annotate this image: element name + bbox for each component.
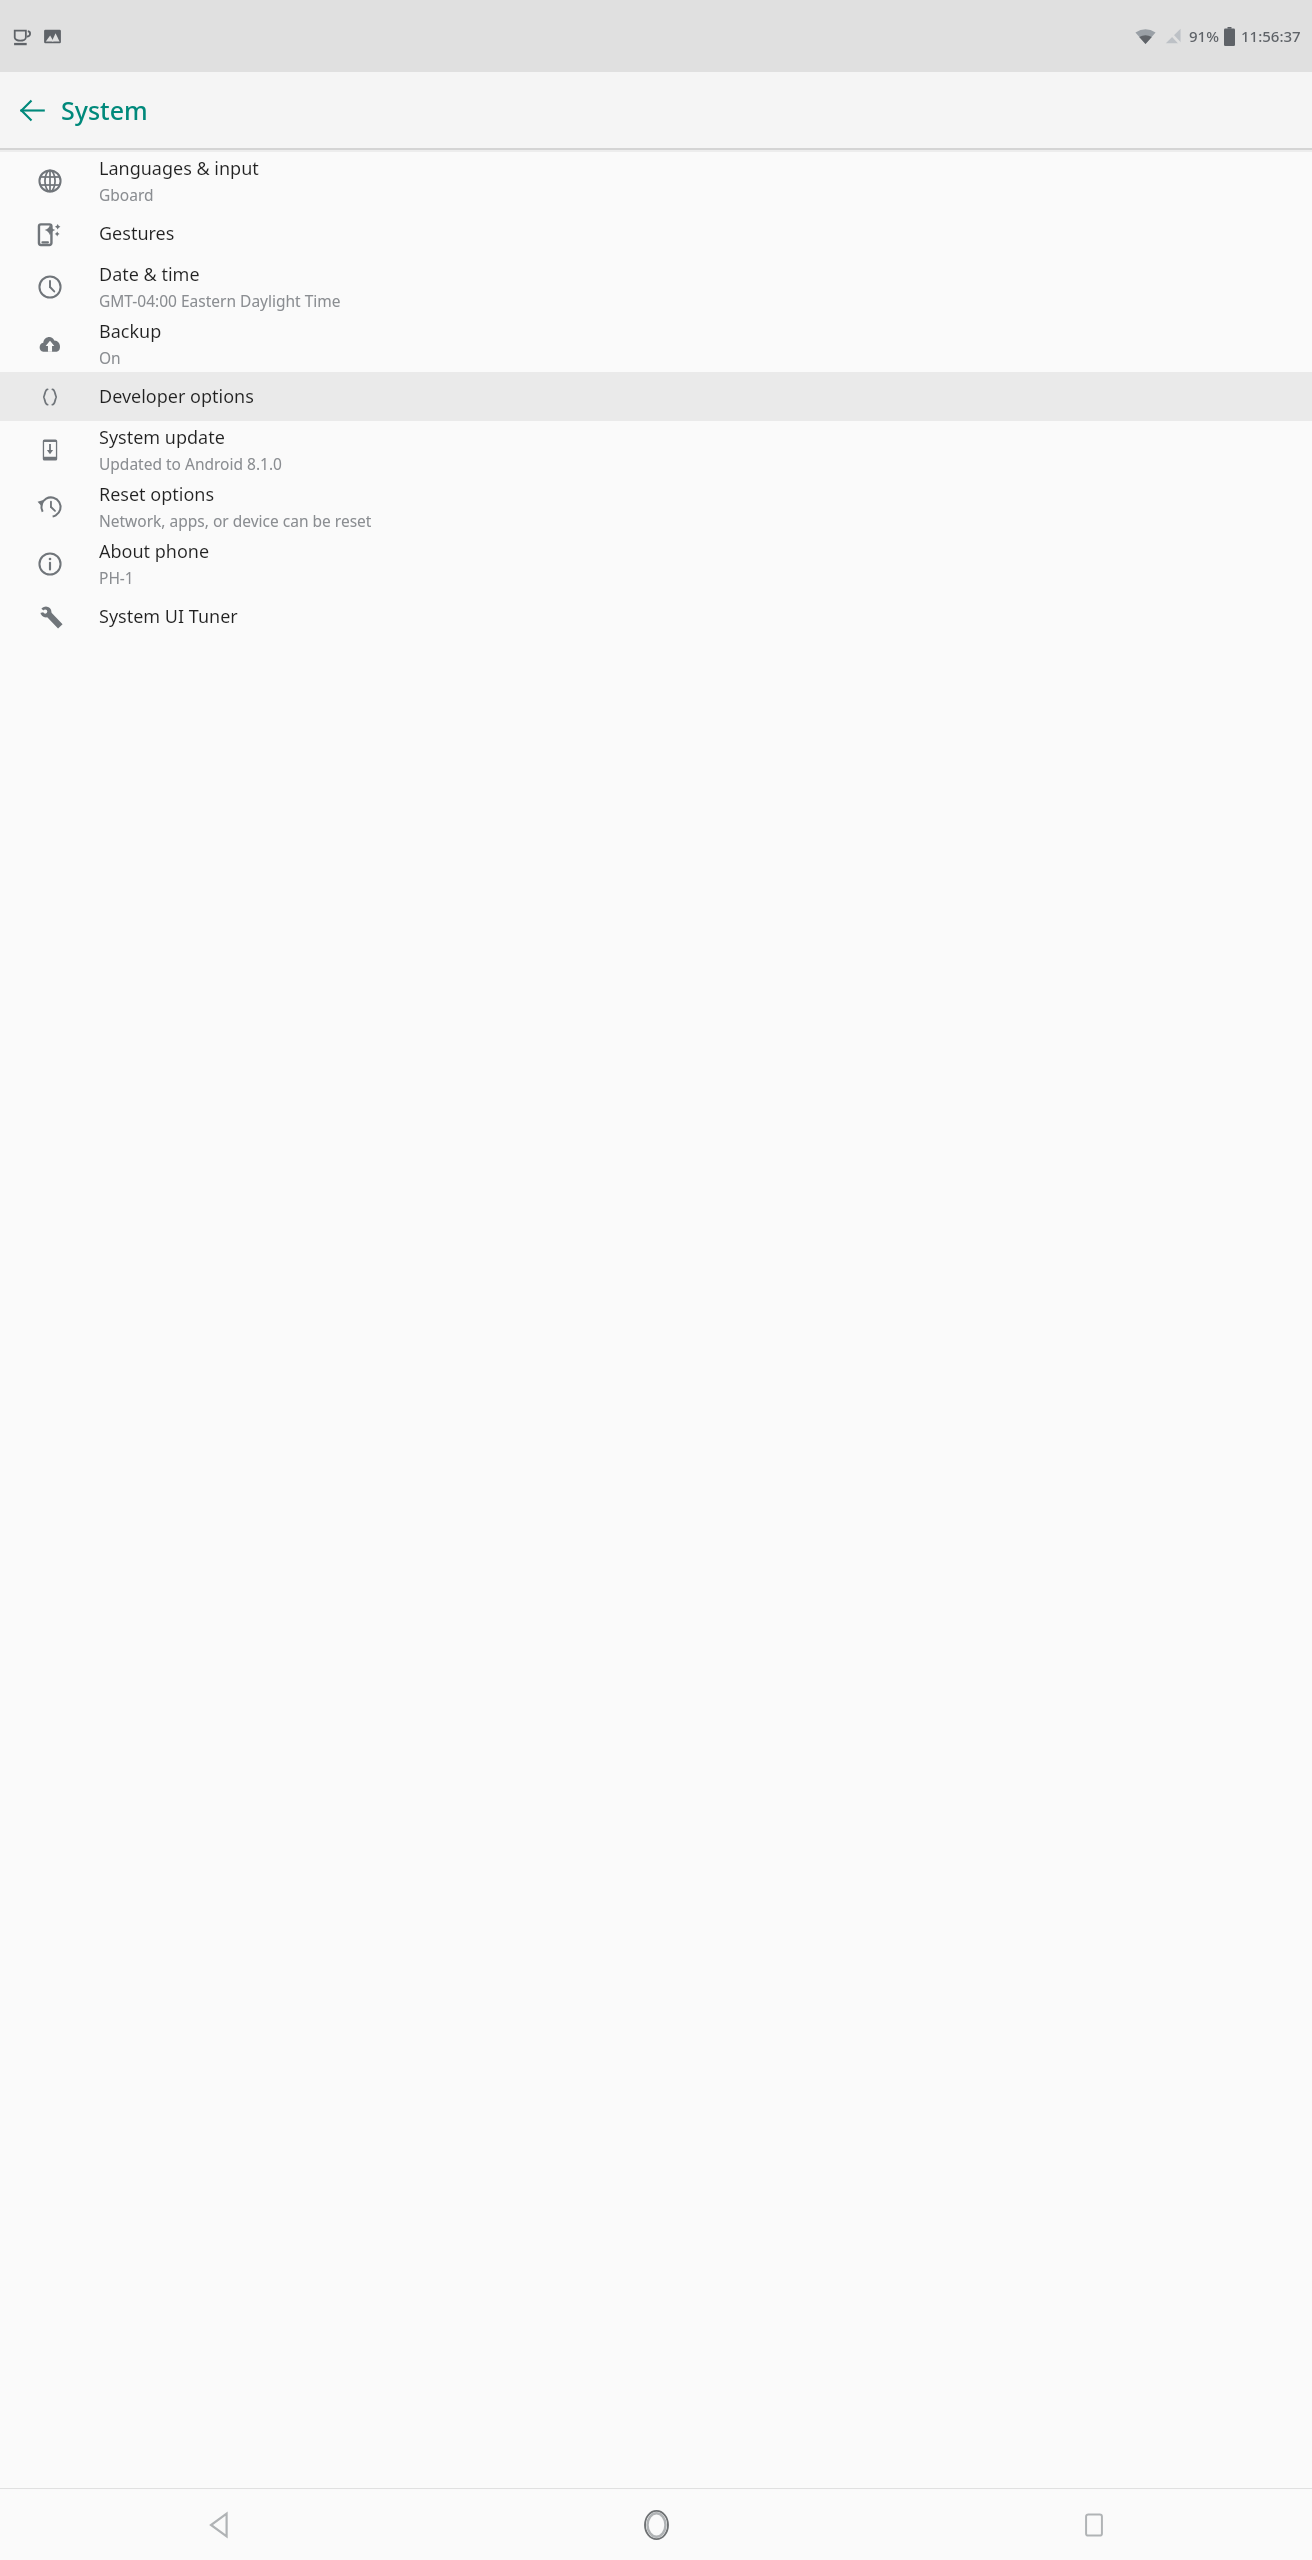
button[interactable]: System update xyxy=(0,421,1312,478)
staticText: Date & time xyxy=(99,262,200,287)
button[interactable]: Date & time xyxy=(0,258,1312,315)
staticText: Languages & input xyxy=(99,156,259,181)
staticText: System xyxy=(61,93,148,127)
staticText: Gestures xyxy=(99,221,175,246)
staticText: Gboard xyxy=(99,184,154,205)
button[interactable]: Back xyxy=(8,86,56,134)
button[interactable]: Languages & input xyxy=(0,152,1312,209)
button[interactable]: Backup xyxy=(0,315,1312,372)
button[interactable]: Gestures xyxy=(0,209,1312,258)
staticText: Backup xyxy=(99,319,162,344)
button[interactable]: Reset options xyxy=(0,478,1312,535)
button[interactable]: Home xyxy=(438,2489,875,2560)
staticText: GMT-04:00 Eastern Daylight Time xyxy=(99,290,341,311)
staticText: System update xyxy=(99,425,225,450)
button[interactable]: Developer options xyxy=(0,372,1312,421)
staticText: 91% xyxy=(1189,26,1219,46)
staticText: Network, apps, or device can be reset xyxy=(99,510,372,531)
button[interactable]: Back xyxy=(0,2489,438,2560)
staticText: Updated to Android 8.1.0 xyxy=(99,453,282,474)
button[interactable]: Recents xyxy=(875,2489,1312,2560)
staticText: PH-1 xyxy=(99,567,134,588)
staticText: 11:56:37 xyxy=(1241,26,1301,46)
staticText: About phone xyxy=(99,539,210,564)
staticText: On xyxy=(99,347,121,368)
button[interactable]: System UI Tuner xyxy=(0,592,1312,641)
staticText: Reset options xyxy=(99,482,215,507)
staticText: System UI Tuner xyxy=(99,604,238,629)
button[interactable]: About phone xyxy=(0,535,1312,592)
staticText: Developer options xyxy=(99,384,254,409)
